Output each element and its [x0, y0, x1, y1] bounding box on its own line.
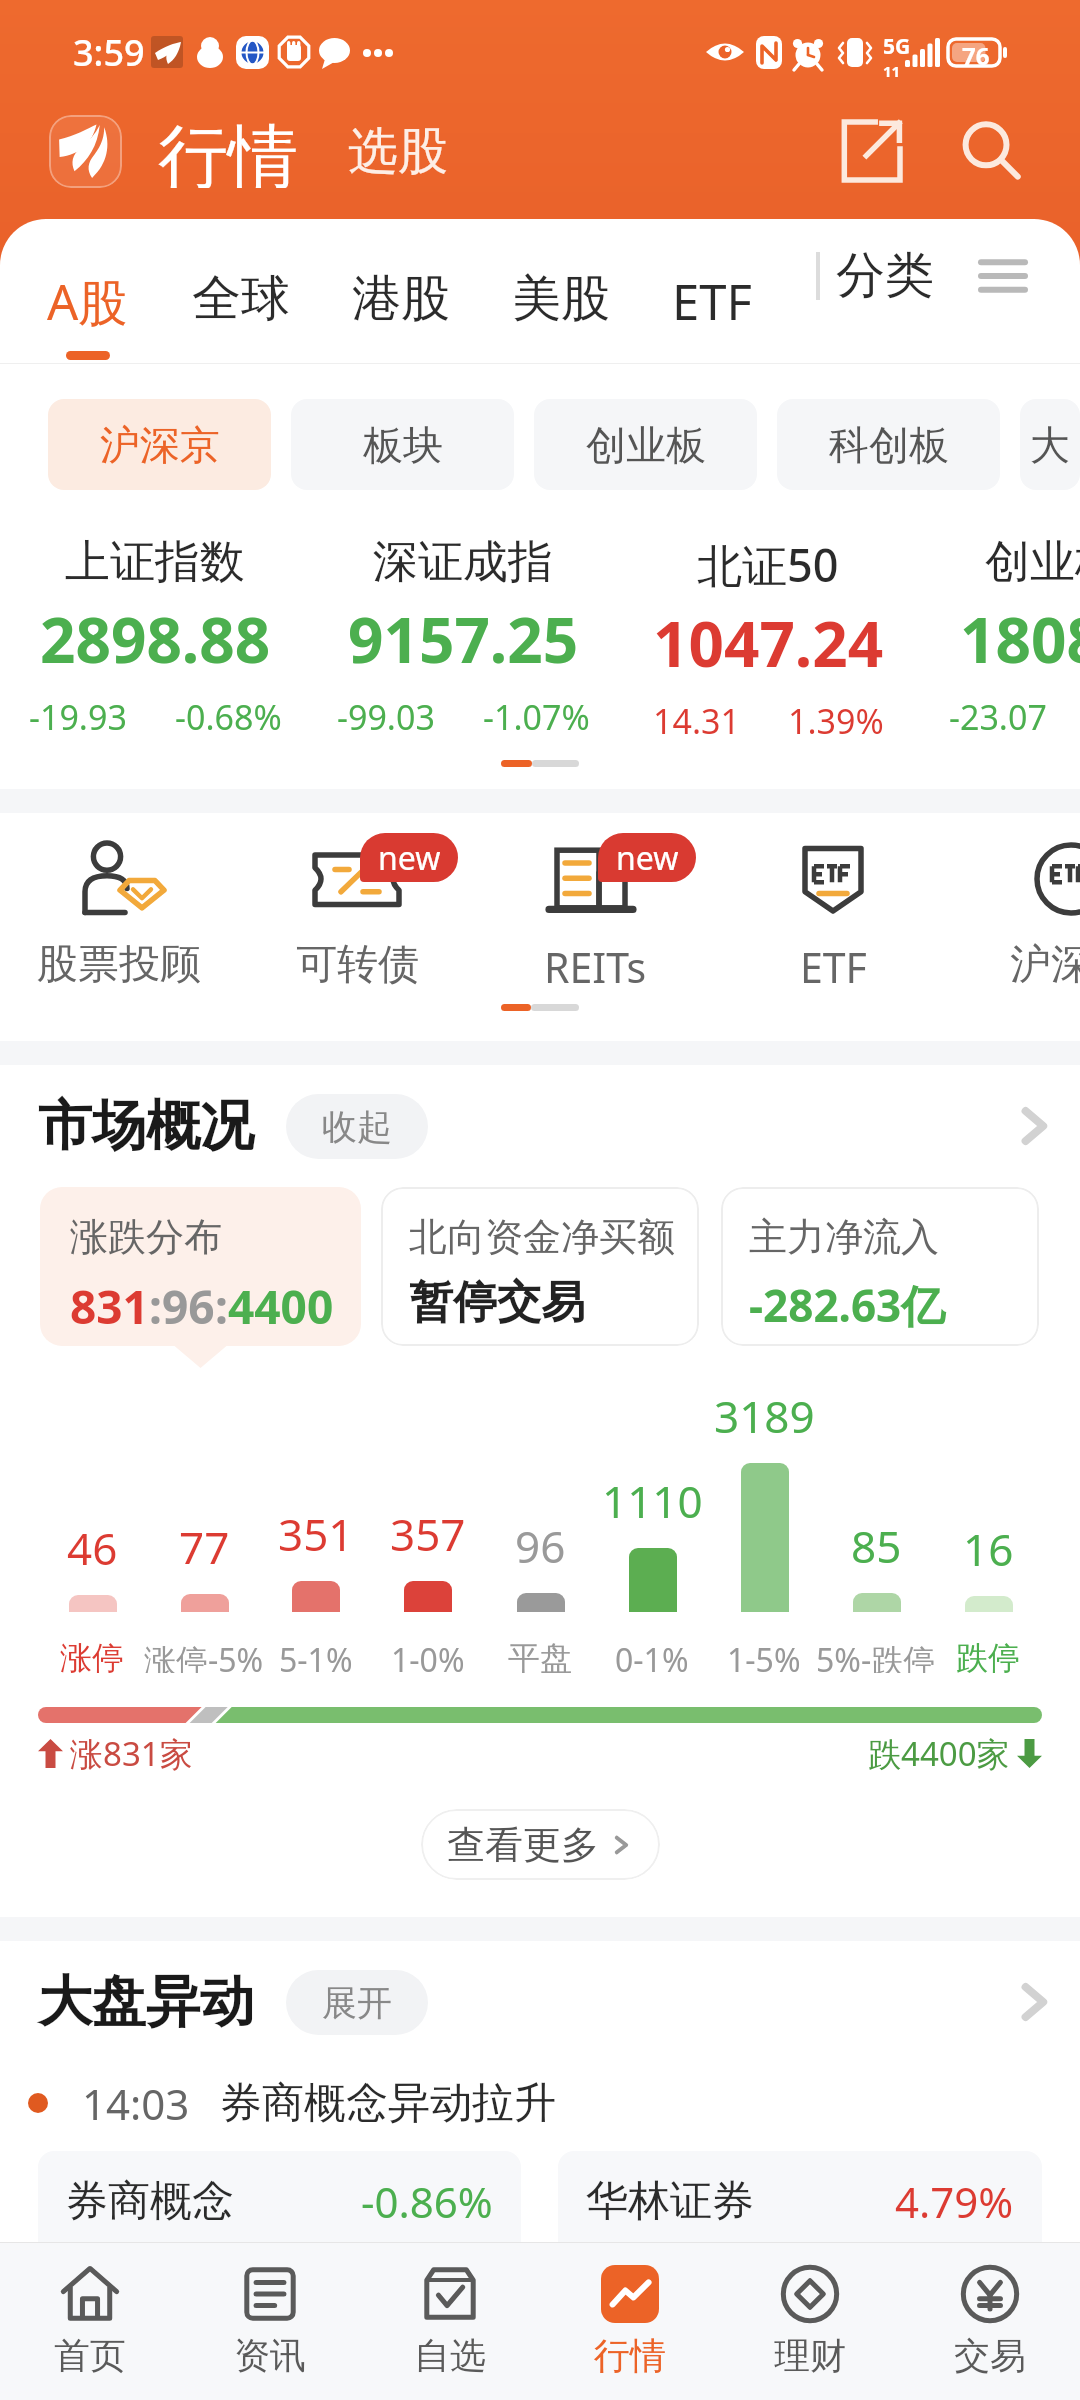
staticText: 357	[390, 1504, 466, 1564]
button[interactable]: new	[476, 833, 714, 995]
staticText: ETF	[672, 268, 752, 335]
staticText: new	[616, 836, 679, 880]
staticText: 831	[70, 1275, 149, 1338]
button[interactable]: 华林证券	[558, 2151, 1042, 2291]
button[interactable]: 交易	[900, 2243, 1080, 2400]
staticText: 3:59	[73, 28, 145, 77]
staticText: new	[378, 836, 441, 880]
staticText: 5G	[883, 32, 911, 61]
staticText: 96	[162, 1275, 215, 1338]
button[interactable]: 主力净流入	[721, 1187, 1039, 1346]
button[interactable]: 科创板	[777, 399, 1000, 490]
button[interactable]: More	[968, 241, 1038, 311]
staticText: 3189	[714, 1386, 815, 1446]
staticText: 自选	[414, 2333, 486, 2378]
staticText: :	[149, 1275, 162, 1338]
staticText: A股	[47, 268, 128, 335]
button[interactable]: ETF	[714, 833, 952, 995]
staticText: 4.79%	[895, 2173, 1014, 2230]
button[interactable]: 创业板指	[920, 490, 1080, 740]
staticText: 5-1%	[279, 1638, 353, 1673]
staticText: 4400	[228, 1275, 334, 1338]
staticText: -282.63亿	[749, 1275, 946, 1335]
button[interactable]: 美股	[512, 219, 610, 363]
button[interactable]: 创业板	[534, 399, 757, 490]
staticText: 96	[515, 1516, 566, 1576]
button[interactable]: 行情	[540, 2243, 720, 2400]
button[interactable]: 北证50	[616, 490, 920, 744]
button[interactable]: 资讯	[180, 2243, 360, 2400]
staticText: 46	[67, 1518, 118, 1578]
staticText: 跌停	[956, 1638, 1020, 1673]
staticText: 创业板	[586, 420, 706, 470]
button[interactable]: 分类	[830, 235, 940, 317]
button[interactable]: Share	[829, 114, 913, 188]
staticText: 券商概念	[66, 2175, 234, 2228]
staticText: 理财	[774, 2333, 846, 2378]
staticText: 大	[1030, 420, 1070, 470]
button[interactable]: 大盘异动	[1002, 1974, 1058, 2030]
button[interactable]: 查看更多	[421, 1809, 660, 1880]
button[interactable]: 大	[1020, 399, 1080, 490]
staticText: 16	[963, 1519, 1014, 1579]
button[interactable]: 展开	[286, 1970, 428, 2035]
staticText: 可转债	[296, 939, 419, 991]
button[interactable]: ETF	[672, 219, 752, 363]
staticText: 资讯	[234, 2333, 306, 2378]
button[interactable]: 北向资金净买额	[381, 1187, 699, 1346]
staticText: 14.31	[653, 698, 740, 744]
button[interactable]: 自选	[360, 2243, 540, 2400]
staticText: 首页	[54, 2333, 126, 2378]
button[interactable]: new	[238, 833, 476, 991]
button[interactable]: 板块	[291, 399, 514, 490]
button[interactable]: 港股	[352, 219, 450, 363]
staticText: 涨跌分布	[70, 1213, 222, 1261]
staticText: 港股	[352, 268, 450, 330]
staticText: 涨停-5%	[144, 1638, 264, 1673]
button[interactable]: 沪深股	[952, 833, 1080, 991]
staticText: 1-5%	[727, 1638, 801, 1673]
staticText: 华林证券	[586, 2175, 754, 2228]
staticText: 科创板	[829, 420, 949, 470]
staticText: 展开	[322, 1981, 392, 2025]
button[interactable]: 深证成指	[310, 490, 616, 740]
staticText: 创业板指	[985, 534, 1080, 591]
button[interactable]: 涨跌分布	[40, 1187, 361, 1346]
button[interactable]: 理财	[720, 2243, 900, 2400]
staticText: -23.07	[949, 694, 1047, 740]
staticText: -99.03	[337, 694, 435, 740]
staticText: 股票投顾	[37, 939, 201, 991]
staticText: 选股	[348, 120, 448, 183]
button[interactable]: 券商概念	[38, 2151, 521, 2291]
staticText: 市场概况	[38, 1092, 254, 1160]
staticText: 分类	[836, 245, 934, 307]
staticText: 9157.25	[348, 597, 579, 681]
staticText: -1.07%	[483, 694, 590, 740]
button[interactable]: 沪深京	[48, 399, 271, 490]
staticText: 收起	[322, 1105, 392, 1149]
staticText: 北向资金净买额	[409, 1213, 675, 1261]
staticText: 0-1%	[615, 1638, 689, 1673]
staticText: 查看更多	[447, 1821, 599, 1869]
button[interactable]: 全球	[192, 219, 290, 363]
button[interactable]: 上证指数	[0, 490, 310, 740]
staticText: 1047.24	[653, 601, 884, 685]
button[interactable]: 股票投顾	[0, 833, 238, 991]
button[interactable]: A股	[47, 219, 128, 363]
staticText: 2898.88	[40, 597, 271, 681]
staticText: 全球	[192, 268, 290, 330]
staticText: 沪深京	[100, 420, 220, 470]
staticText: 北证50	[697, 534, 839, 595]
staticText: -0.86%	[361, 2173, 493, 2230]
staticText: 行情	[158, 114, 298, 188]
staticText: 77	[179, 1517, 230, 1577]
staticText: 沪深股	[1010, 939, 1080, 991]
staticText: 跌4400家	[868, 1731, 1010, 1776]
button[interactable]: 市场概况	[1002, 1098, 1058, 1154]
button[interactable]: 首页	[0, 2243, 180, 2400]
staticText: 上证指数	[65, 534, 245, 591]
button[interactable]: 收起	[286, 1094, 428, 1159]
staticText: 主力净流入	[749, 1213, 939, 1261]
staticText: 涨停	[60, 1638, 124, 1673]
button[interactable]: Search	[949, 114, 1033, 188]
